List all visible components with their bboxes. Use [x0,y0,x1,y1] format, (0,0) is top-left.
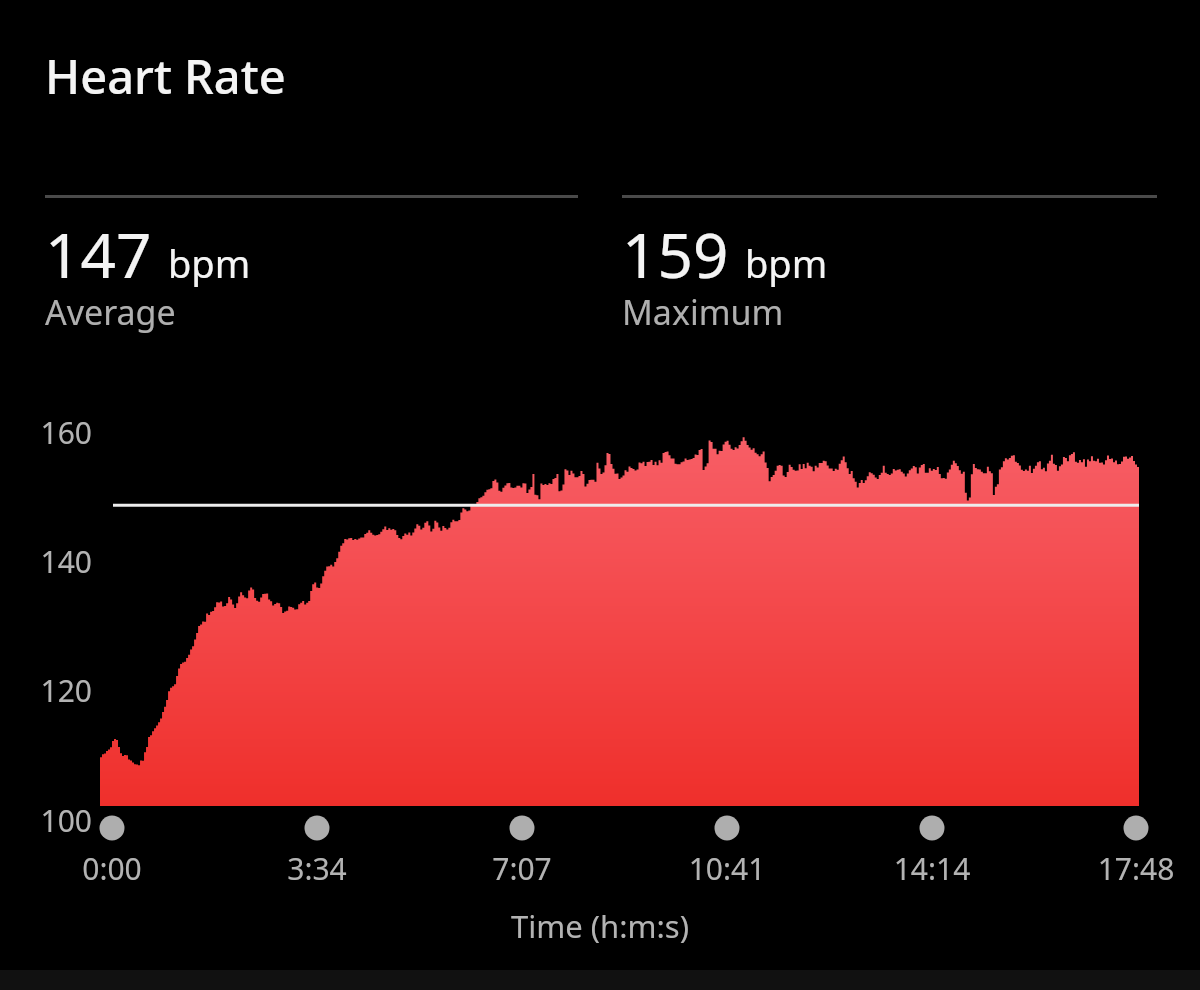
staticText: Average [45,289,176,335]
button[interactable]: Heart rate chart [0,0,1200,990]
staticText: 159 [622,212,729,296]
staticText: 140 [0,541,92,581]
staticText: 100 [0,800,92,840]
staticText: 147 [45,212,152,296]
staticText: 7:07 [462,848,582,888]
staticText: bpm [745,237,828,289]
staticText: 0:00 [52,848,172,888]
button[interactable]: 159 [622,190,1157,340]
button[interactable]: 147 [45,190,578,340]
staticText: 3:34 [257,848,377,888]
staticText: 10:41 [667,848,787,888]
staticText: Heart Rate [45,44,286,108]
staticText: Time (h:m:s) [0,905,1200,947]
staticText: Maximum [622,289,784,335]
staticText: 120 [0,670,92,710]
staticText: 17:48 [1076,848,1196,888]
staticText: 14:14 [872,848,992,888]
staticText: 160 [0,412,92,452]
staticText: bpm [168,237,251,289]
